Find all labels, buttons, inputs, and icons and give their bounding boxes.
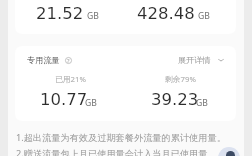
staticText: GB <box>198 10 210 22</box>
staticText: ? <box>67 57 70 64</box>
staticText: 21.52 <box>36 4 84 23</box>
staticText: 2.赠送流量包上月已使用量会计入当月已使用量。 <box>16 147 217 156</box>
staticText: 10.77 <box>40 90 88 109</box>
staticText: GB <box>85 97 97 109</box>
staticText: GB <box>196 97 208 109</box>
staticText: 专用流量 <box>27 55 60 65</box>
staticText: 1.超出流量为有效及过期套餐外流量的累计使用量。 <box>16 131 226 144</box>
button[interactable]: 展开详情 <box>178 55 224 65</box>
staticText: 428.48 <box>137 4 195 23</box>
staticText: GB <box>87 10 99 22</box>
staticText: 39.23 <box>151 90 199 109</box>
staticText: 展开详情 <box>178 55 211 65</box>
staticText: 剩余79% <box>165 74 196 85</box>
staticText: 已用21% <box>55 74 86 85</box>
button[interactable]: Customer service <box>218 147 240 156</box>
